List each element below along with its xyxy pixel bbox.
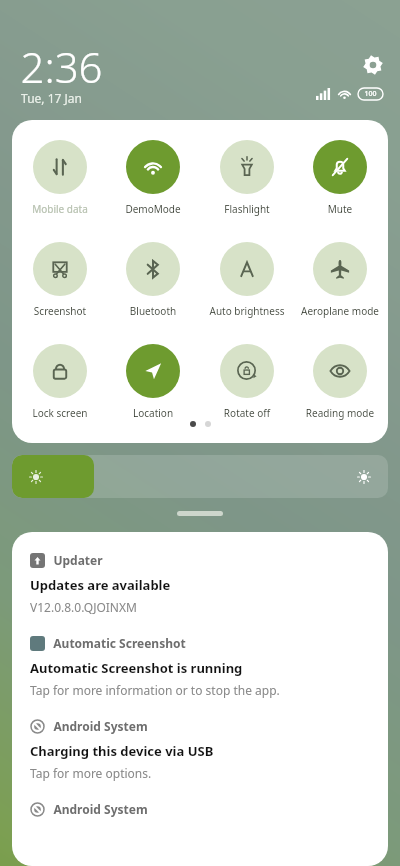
staticText: Android System [53,718,148,734]
button[interactable]: DemoMode [107,138,199,218]
button[interactable]: Location [107,342,199,422]
button[interactable]: Mobile data [14,138,106,218]
staticText: Automatic Screenshot is running [30,659,372,677]
staticText: Charging this device via USB [30,742,372,760]
staticText: Location [107,406,199,420]
button[interactable]: Screenshot [14,240,106,320]
button[interactable]: Flashlight [201,138,293,218]
staticText: Tap for more information or to stop the … [30,682,372,698]
staticText: Mute [294,202,386,216]
button[interactable]: Brightness [12,455,388,498]
button[interactable]: Settings [358,50,388,80]
button[interactable]: Android System [12,781,388,817]
staticText: Tue, 17 Jan [21,90,82,106]
staticText: Updates are available [30,576,372,594]
staticText: Flashlight [201,202,293,216]
staticText: Lock screen [14,406,106,420]
staticText: Reading mode [294,406,386,420]
staticText: Rotate off [201,406,293,420]
staticText: Auto brightness [201,304,293,318]
staticText: Bluetooth [107,304,199,318]
staticText: Android System [53,801,148,817]
staticText: Tap for more options. [30,765,372,781]
staticText: Updater [53,552,103,568]
button[interactable]: Mute [294,138,386,218]
button[interactable]: Bluetooth [107,240,199,320]
staticText: Mobile data [14,202,106,216]
button[interactable]: Automatic Screenshot [12,615,388,698]
button[interactable]: Rotate off [201,342,293,422]
staticText: 2:36 [20,38,103,95]
button[interactable]: Aeroplane mode [294,240,386,320]
staticText: Screenshot [14,304,106,318]
staticText: DemoMode [107,202,199,216]
button[interactable]: Auto brightness [201,240,293,320]
button[interactable]: Lock screen [14,342,106,422]
button[interactable]: Reading mode [294,342,386,422]
staticText: Automatic Screenshot [53,635,186,651]
button[interactable]: Updater [12,532,388,615]
staticText: Aeroplane mode [294,304,386,318]
staticText: V12.0.8.0.QJOINXM [30,599,372,615]
button[interactable]: Android System [12,698,388,781]
staticText: 100 [364,89,377,99]
